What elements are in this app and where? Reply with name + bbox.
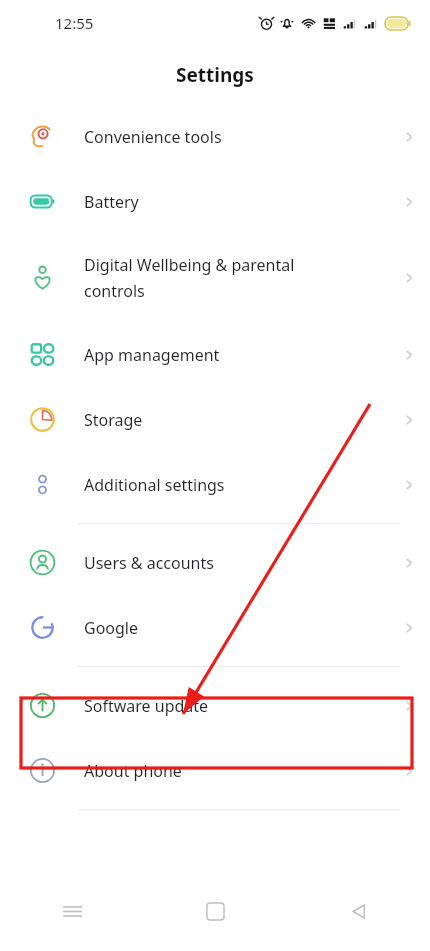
button[interactable]: Battery [0,169,430,234]
staticText: Users & accounts [84,552,370,574]
button[interactable]: Users & accounts [0,530,430,595]
staticText: Software update [84,695,370,717]
staticText: Convenience tools [84,126,370,148]
staticText: App management [84,344,370,366]
staticText: Storage [84,409,370,431]
staticText: Digital Wellbeing & parental controls [84,254,370,302]
button[interactable]: Recent apps [0,887,144,935]
button[interactable]: Software update [0,673,430,738]
button[interactable]: Digital Wellbeing & parental controls [0,234,430,322]
staticText: Settings [176,62,254,88]
button[interactable]: Convenience tools [0,104,430,169]
button[interactable]: App management [0,322,430,387]
staticText: Battery [84,191,370,213]
staticText: Google [84,617,370,639]
staticText: About phone [84,760,370,782]
button[interactable]: Back [287,887,430,935]
staticText: 12:55 [55,13,94,33]
button[interactable]: Storage [0,387,430,452]
button[interactable]: Additional settings [0,452,430,517]
staticText: Additional settings [84,474,370,496]
button[interactable]: Home [144,887,287,935]
button[interactable]: Google [0,595,430,660]
button[interactable]: About phone [0,738,430,803]
